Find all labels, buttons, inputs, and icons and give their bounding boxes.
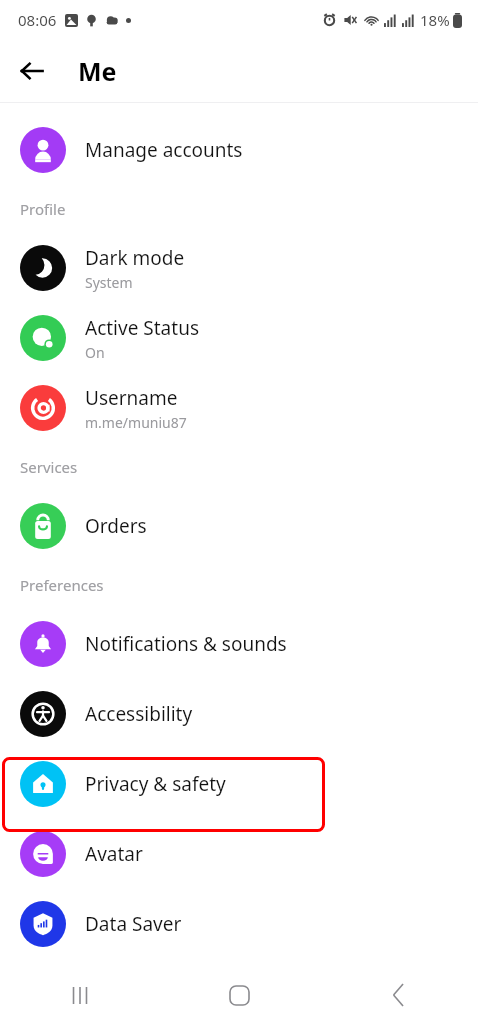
staticText: Preferences [20, 575, 104, 595]
staticText: System [85, 273, 133, 292]
button[interactable]: Home [160, 966, 319, 1024]
staticText: Manage accounts [85, 137, 243, 163]
staticText: m.me/muniu87 [85, 413, 187, 432]
staticText: Services [20, 457, 78, 477]
button[interactable]: Avatar [0, 819, 478, 889]
button[interactable]: Recent apps [0, 966, 160, 1024]
staticText: Me [78, 54, 117, 88]
button[interactable]: Notifications & sounds [0, 609, 478, 679]
button[interactable]: Username [0, 373, 478, 443]
staticText: Username [85, 385, 178, 411]
button[interactable]: Orders [0, 491, 478, 561]
button[interactable]: Back [319, 966, 478, 1024]
button[interactable]: Data Saver [0, 889, 478, 959]
staticText: Data Saver [85, 911, 182, 937]
button[interactable]: Dark mode [0, 233, 478, 303]
staticText: Privacy & safety [85, 771, 226, 797]
staticText: Notifications & sounds [85, 631, 287, 657]
staticText: Accessibility [85, 701, 193, 727]
staticText: On [85, 343, 105, 362]
button[interactable]: Privacy & safety [0, 749, 478, 819]
staticText: 08:06 [18, 10, 57, 30]
button[interactable]: Accessibility [0, 679, 478, 749]
staticText: 18% [420, 10, 450, 30]
button[interactable]: Active Status [0, 303, 478, 373]
staticText: Avatar [85, 841, 143, 867]
staticText: Profile [20, 199, 66, 219]
button[interactable]: Back [8, 47, 56, 95]
staticText: Dark mode [85, 245, 185, 271]
staticText: Active Status [85, 315, 199, 341]
staticText: Orders [85, 513, 147, 539]
button[interactable]: Manage accounts [0, 115, 478, 185]
